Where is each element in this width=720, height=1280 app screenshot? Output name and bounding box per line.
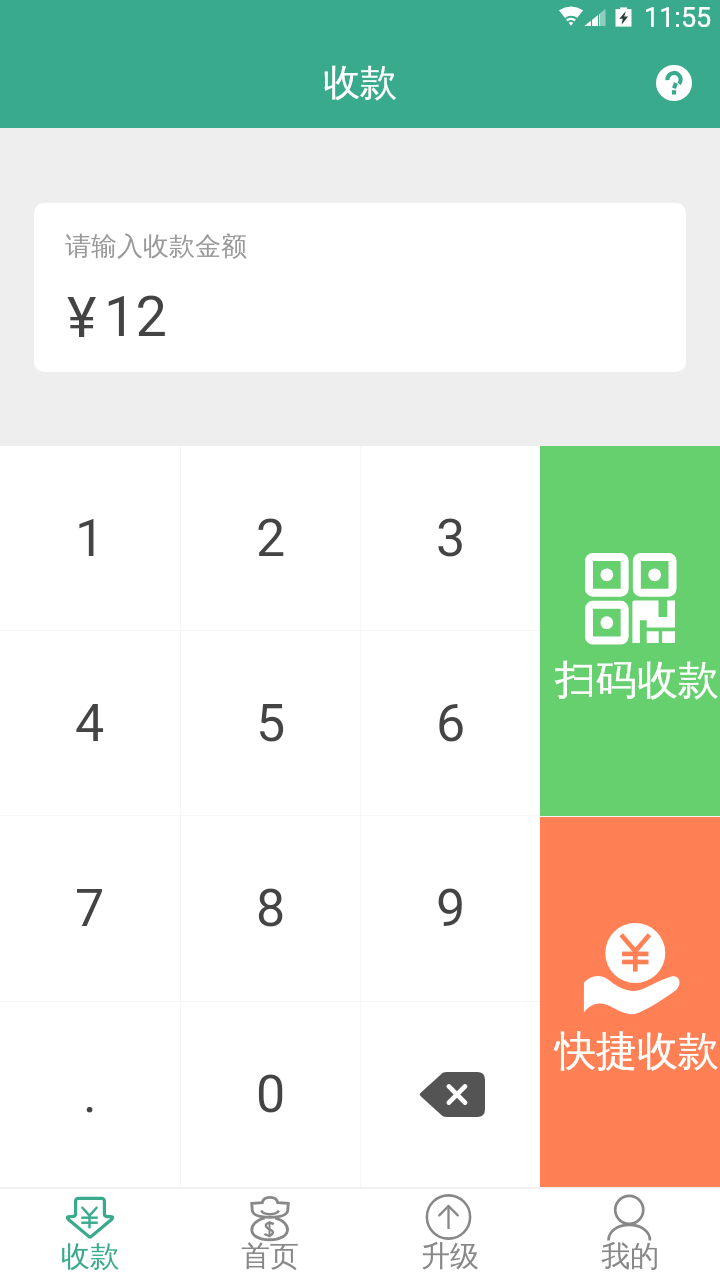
button[interactable]: 7: [0, 816, 180, 1001]
staticText: 1: [75, 508, 105, 569]
button[interactable]: 4: [0, 631, 180, 815]
button[interactable]: 9: [361, 816, 540, 1001]
button[interactable]: 扫码收款: [540, 446, 720, 816]
staticText: 7: [75, 878, 105, 939]
button[interactable]: .: [0, 1002, 180, 1187]
staticText: 我的: [601, 1238, 659, 1275]
staticText: 0: [256, 1064, 286, 1125]
button[interactable]: 我的: [540, 1189, 720, 1280]
staticText: 3: [436, 508, 466, 569]
staticText: .: [83, 1064, 97, 1125]
button[interactable]: 首页: [180, 1189, 360, 1280]
staticText: 请输入收款金额: [65, 230, 247, 263]
button[interactable]: 8: [181, 816, 360, 1001]
button[interactable]: 6: [361, 631, 540, 815]
button[interactable]: 1: [0, 446, 180, 630]
staticText: 2: [256, 508, 286, 569]
staticText: 11:55: [644, 2, 712, 34]
button[interactable]: 请输入收款金额: [34, 203, 686, 372]
button[interactable]: Help: [648, 57, 700, 109]
staticText: ¥: [67, 285, 97, 351]
button[interactable]: 2: [181, 446, 360, 630]
staticText: 收款: [323, 59, 397, 106]
button[interactable]: 5: [181, 631, 360, 815]
button[interactable]: 升级: [360, 1189, 540, 1280]
staticText: 首页: [241, 1238, 299, 1275]
button[interactable]: 收款: [0, 1189, 180, 1280]
staticText: 收款: [61, 1238, 119, 1275]
staticText: 4: [75, 693, 105, 754]
staticText: 12: [104, 284, 167, 350]
staticText: 快捷收款: [555, 1026, 719, 1078]
button[interactable]: 0: [181, 1002, 360, 1187]
staticText: 8: [256, 878, 286, 939]
button[interactable]: 3: [361, 446, 540, 630]
staticText: 升级: [421, 1238, 479, 1275]
staticText: 9: [436, 878, 466, 939]
staticText: 6: [436, 693, 466, 754]
staticText: 5: [256, 693, 286, 754]
button[interactable]: Delete: [361, 1002, 540, 1187]
staticText: 扫码收款: [555, 655, 719, 707]
button[interactable]: 快捷收款: [540, 817, 720, 1187]
